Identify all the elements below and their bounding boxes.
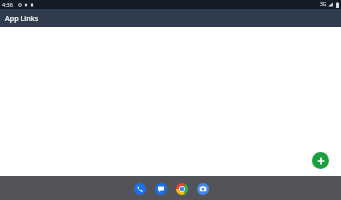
staticText: App Links: [5, 13, 39, 23]
button[interactable]: Phone: [132, 181, 147, 196]
button[interactable]: Messages: [153, 181, 168, 196]
staticText: 3G: [320, 1, 327, 8]
button[interactable]: Camera: [195, 181, 210, 196]
button[interactable]: Chrome: [174, 181, 189, 196]
button[interactable]: Add app link: [312, 152, 329, 169]
staticText: 4:36: [2, 1, 13, 8]
